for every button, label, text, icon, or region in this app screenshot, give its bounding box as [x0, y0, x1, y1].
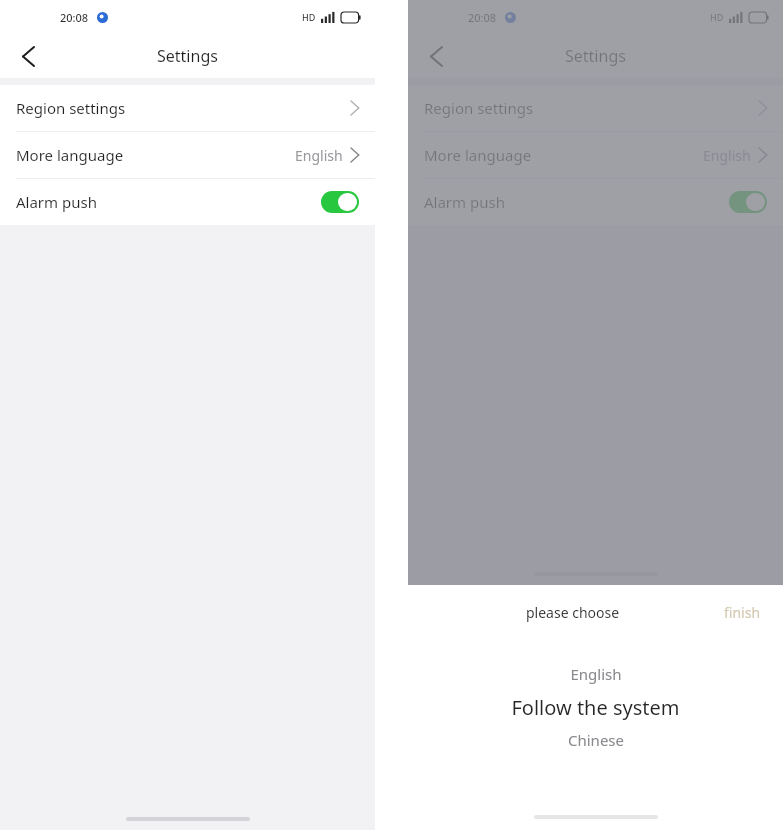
- staticText: Alarm push: [16, 192, 97, 212]
- button[interactable]: Alarm push toggle: [321, 191, 359, 213]
- staticText: Region settings: [424, 98, 534, 118]
- button[interactable]: More language: [408, 132, 783, 179]
- staticText: 20:08: [60, 10, 89, 25]
- staticText: More language: [424, 145, 532, 165]
- staticText: Settings: [565, 45, 626, 67]
- button[interactable]: Region settings: [0, 85, 375, 132]
- staticText: please choose: [526, 603, 620, 622]
- staticText: Region settings: [16, 98, 126, 118]
- button[interactable]: More language: [0, 132, 375, 179]
- staticText: HD: [710, 11, 724, 23]
- button[interactable]: Region settings: [408, 85, 783, 132]
- staticText: English: [295, 146, 343, 165]
- button[interactable]: Back: [6, 34, 50, 78]
- staticText: More language: [16, 145, 124, 165]
- staticText: English: [570, 664, 622, 684]
- button[interactable]: Alarm push: [408, 179, 783, 225]
- button[interactable]: English: [408, 659, 783, 689]
- staticText: English: [703, 146, 751, 165]
- staticText: Alarm push: [424, 192, 505, 212]
- button[interactable]: Back: [414, 34, 458, 78]
- button[interactable]: Alarm push toggle: [729, 191, 767, 213]
- staticText: Follow the system: [511, 694, 680, 721]
- staticText: finish: [724, 603, 761, 622]
- button[interactable]: Chinese: [408, 725, 783, 755]
- button[interactable]: Alarm push: [0, 179, 375, 225]
- staticText: Chinese: [568, 730, 624, 750]
- staticText: Settings: [157, 45, 218, 67]
- button[interactable]: finish: [720, 599, 765, 626]
- button[interactable]: Follow the system: [408, 689, 783, 725]
- staticText: HD: [302, 11, 316, 23]
- staticText: 20:08: [468, 10, 497, 25]
